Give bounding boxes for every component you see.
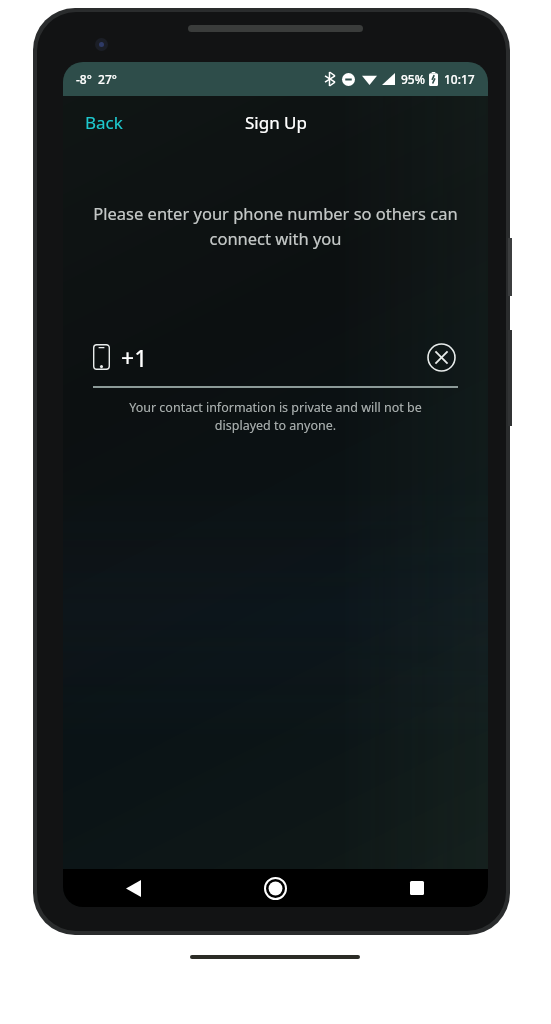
staticText: 95% [401,71,425,87]
staticText: +1 [121,342,148,373]
staticText: 10:17 [444,71,475,87]
button[interactable]: Back [73,103,135,142]
button[interactable]: Recent apps [346,869,488,907]
staticText: -8° 27° [76,71,117,87]
button[interactable]: Home [204,869,346,907]
staticText: Back [85,111,123,134]
button[interactable]: Clear phone number [424,340,458,374]
staticText: Your contact information is private and … [101,399,450,434]
button[interactable]: Back [63,869,204,907]
staticText: Sign Up [245,111,307,134]
staticText: Please enter your phone number so others… [91,202,460,249]
button[interactable]: +1 [93,334,458,380]
